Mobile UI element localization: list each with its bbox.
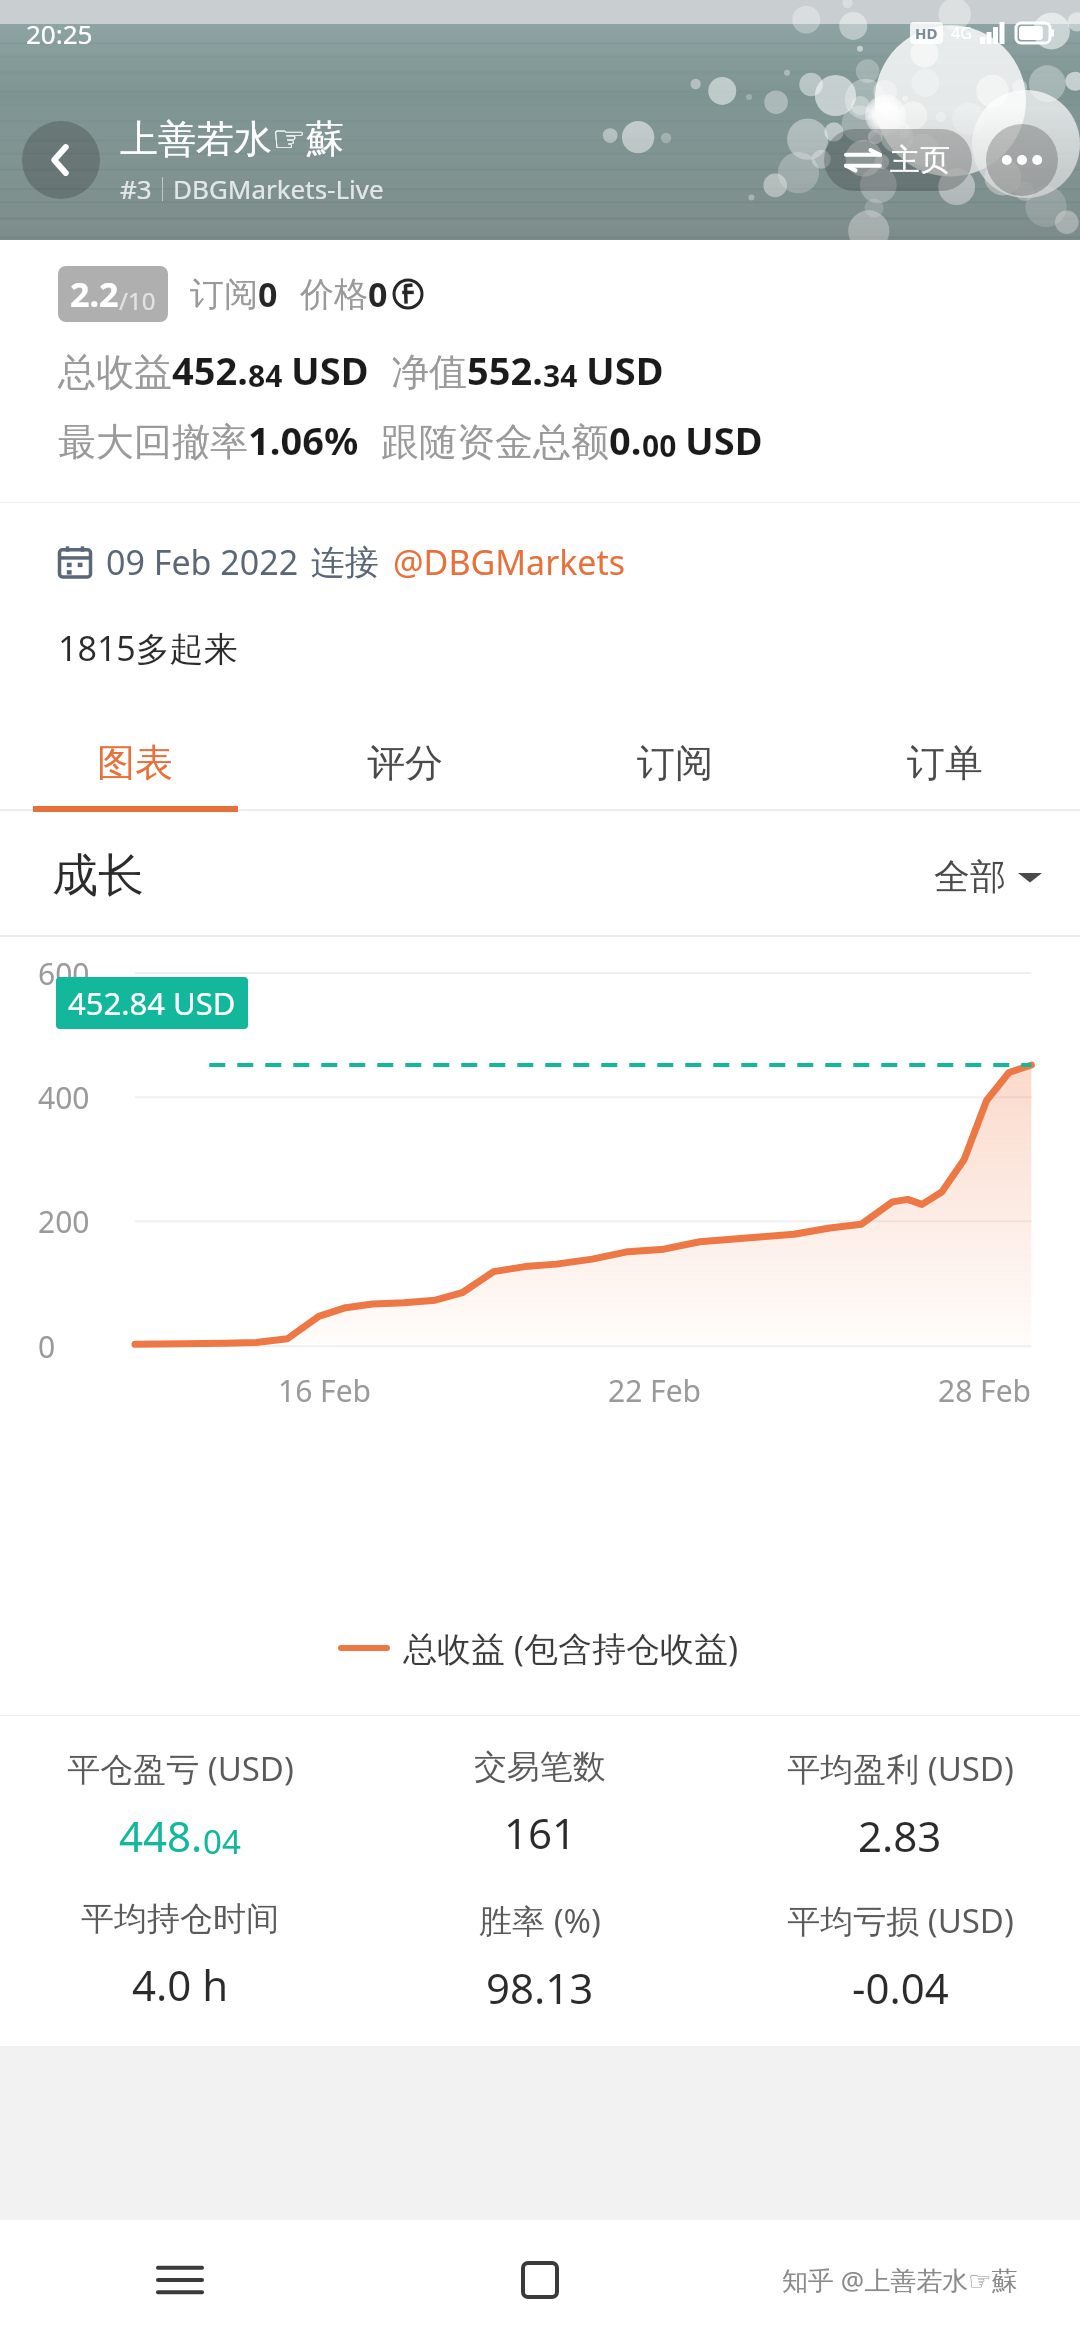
staticText: 84 xyxy=(248,355,283,396)
staticText: 知乎 @上善若水☞蘇 xyxy=(782,2262,1018,2298)
staticText: 总收益 (包含持仓收益) xyxy=(403,1625,739,1671)
staticText: 平均亏损 (USD) xyxy=(787,1898,1014,1943)
staticText: 连接 xyxy=(311,541,379,584)
staticText: 400 xyxy=(38,1077,90,1118)
staticText: 0 xyxy=(368,271,388,317)
staticText: 净值 xyxy=(391,348,467,396)
staticText: 16 Feb xyxy=(278,1370,372,1411)
staticText: 452. xyxy=(172,344,248,396)
staticText: 交易笔数 xyxy=(474,1746,606,1788)
staticText: USD xyxy=(685,414,763,466)
button[interactable]: Back xyxy=(22,121,100,199)
staticText: 1.06% xyxy=(248,414,359,466)
button[interactable]: 主页 xyxy=(824,129,972,191)
staticText: 1815多起来 xyxy=(58,625,238,671)
staticText: 2.83 xyxy=(858,1807,942,1864)
staticText: 0. xyxy=(609,414,642,466)
staticText: 图表 xyxy=(97,739,173,787)
staticText: 34 xyxy=(543,355,578,396)
staticText: 0 xyxy=(38,1326,56,1367)
staticText: 订阅 xyxy=(190,273,258,316)
staticText: 主页 xyxy=(890,141,950,179)
staticText: 04 xyxy=(203,1819,241,1864)
staticText: 价格 xyxy=(300,273,368,316)
staticText: 28 Feb xyxy=(938,1370,1032,1411)
staticText: 00 xyxy=(642,425,677,466)
staticText: 成长 xyxy=(52,847,144,905)
staticText: 0 xyxy=(258,271,278,317)
staticText: 胜率 (%) xyxy=(479,1898,601,1943)
staticText: USD xyxy=(586,344,664,396)
staticText: 全部 xyxy=(934,854,1006,899)
button[interactable]: Recent apps xyxy=(0,2220,360,2340)
staticText: 4G xyxy=(951,22,972,44)
staticText: 跟随资金总额 xyxy=(381,418,609,466)
staticText: 平仓盈亏 (USD) xyxy=(67,1746,294,1791)
staticText: 09 Feb 2022 xyxy=(106,539,299,585)
button[interactable]: 评分 xyxy=(270,717,540,809)
staticText: -0.04 xyxy=(852,1959,949,2016)
button[interactable]: 图表 xyxy=(0,717,270,809)
staticText: 上善若水☞蘇 xyxy=(120,115,345,163)
staticText: @DBGMarkets xyxy=(393,539,626,585)
staticText: 22 Feb xyxy=(608,1370,702,1411)
staticText: HD xyxy=(915,23,938,43)
staticText: 20:25 xyxy=(26,16,93,51)
staticText: 平均持仓时间 xyxy=(81,1898,279,1940)
button[interactable]: 订阅 xyxy=(540,717,810,809)
staticText: 最大回撤率 xyxy=(58,418,248,466)
staticText: 552. xyxy=(467,344,543,396)
staticText: 订单 xyxy=(907,739,983,787)
staticText: 2.2 xyxy=(70,271,119,317)
staticText: #3 xyxy=(120,171,152,206)
staticText: 总收益 xyxy=(58,348,172,396)
button[interactable]: 订单 xyxy=(810,717,1080,809)
staticText: 98.13 xyxy=(486,1959,594,2016)
staticText: 600 xyxy=(38,953,90,994)
button[interactable]: Home xyxy=(360,2220,720,2340)
button[interactable]: 09 Feb 2022 xyxy=(58,539,1080,585)
staticText: 161 xyxy=(504,1804,577,1861)
staticText: DBGMarkets-Live xyxy=(173,171,384,206)
staticText: 452.84 USD xyxy=(68,982,236,1024)
staticText: 订阅 xyxy=(637,739,713,787)
button[interactable]: More options xyxy=(986,124,1058,196)
staticText: USD xyxy=(291,344,369,396)
staticText: 448. xyxy=(119,1807,203,1864)
staticText: 200 xyxy=(38,1201,90,1242)
staticText: 评分 xyxy=(367,739,443,787)
staticText: 平均盈利 (USD) xyxy=(787,1746,1014,1791)
staticText: 4.0 h xyxy=(132,1956,229,2013)
button[interactable]: 全部 xyxy=(934,854,1042,899)
staticText: /10 xyxy=(119,284,156,317)
